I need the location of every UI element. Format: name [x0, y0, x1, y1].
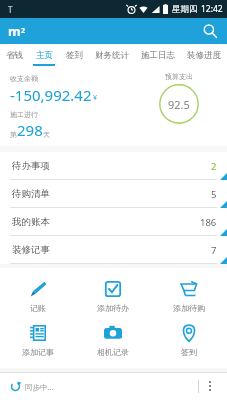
staticText: 添加待购 [173, 303, 205, 313]
staticText: 同步中... [25, 382, 54, 392]
staticText: 财务统计 [95, 50, 129, 61]
button[interactable]: 添加待购 [151, 274, 227, 318]
staticText: 收支余额 [10, 74, 38, 83]
button[interactable]: 添加记事 [0, 318, 75, 362]
button[interactable]: 我的账本 [0, 208, 227, 236]
staticText: 主页 [36, 50, 53, 61]
staticText: 施工进行 [10, 110, 38, 119]
staticText: 2 [21, 26, 26, 36]
staticText: 签到 [66, 50, 83, 61]
button[interactable]: 财务统计 [89, 44, 135, 66]
staticText: 第 [10, 130, 17, 139]
staticText: 添加记事 [22, 347, 54, 357]
button[interactable]: 签到 [151, 318, 227, 362]
button[interactable]: 装修进度 [181, 44, 227, 66]
button[interactable]: 待购清单 [0, 180, 227, 208]
staticText: 装修进度 [187, 50, 221, 61]
staticText: 待购清单 [12, 188, 50, 200]
staticText: 5 [211, 188, 217, 201]
staticText: 7 [211, 244, 217, 257]
staticText: 预算支出 [165, 72, 193, 81]
button[interactable]: 添加待办 [75, 274, 151, 318]
button[interactable]: 签到 [59, 44, 89, 66]
button[interactable]: 记账 [0, 274, 75, 318]
button[interactable]: 同步中... [10, 381, 54, 392]
staticText: 92.5 [168, 97, 190, 112]
button[interactable]: 待办事项 [0, 152, 227, 180]
button[interactable]: 主页 [29, 44, 59, 66]
staticText: 2 [211, 160, 217, 173]
staticText: 186 [200, 216, 217, 229]
staticText: -150,992.42 [10, 85, 92, 105]
staticText: 相机记录 [97, 347, 129, 357]
button[interactable]: More options [199, 372, 221, 400]
button[interactable]: 省钱 [0, 44, 29, 66]
staticText: m [8, 22, 21, 40]
button[interactable]: 装修记事 [0, 236, 227, 264]
staticText: 记账 [30, 303, 46, 313]
staticText: 添加待办 [97, 303, 129, 313]
staticText: 省钱 [6, 50, 23, 61]
staticText: 签到 [181, 347, 197, 357]
button[interactable]: 相机记录 [75, 318, 151, 362]
staticText: 天 [43, 130, 50, 139]
staticText: 星期四 [172, 4, 198, 15]
staticText: 装修记事 [12, 244, 50, 256]
button[interactable]: 施工日志 [135, 44, 181, 66]
staticText: 12:42 [201, 3, 223, 15]
staticText: T [8, 4, 13, 15]
staticText: ¥ [93, 93, 98, 103]
staticText: 施工日志 [141, 50, 175, 61]
staticText: 待办事项 [12, 160, 50, 172]
button[interactable]: Search [199, 20, 221, 42]
staticText: 298 [17, 120, 43, 140]
staticText: 我的账本 [12, 216, 50, 228]
